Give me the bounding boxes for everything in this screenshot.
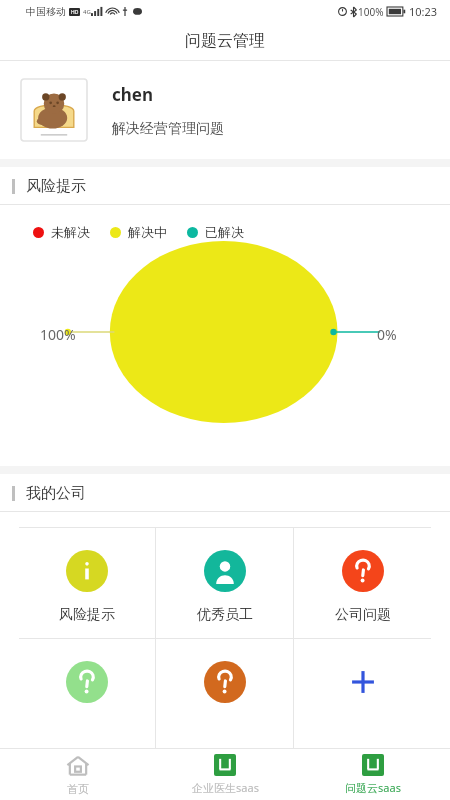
button[interactable] <box>294 639 431 748</box>
staticText: 中国移动 <box>26 5 66 18</box>
staticText: 未解决 <box>51 224 90 240</box>
button[interactable] <box>19 639 155 748</box>
staticText: 问题云saas <box>345 780 401 795</box>
staticText: 问题云管理 <box>185 31 265 51</box>
button[interactable] <box>156 639 293 748</box>
staticText: 100% <box>40 325 76 344</box>
button[interactable]: 首页 <box>8 749 148 800</box>
staticText: 优秀员工 <box>197 606 253 624</box>
staticText: 4G <box>83 8 91 16</box>
button[interactable]: 问题云saas <box>303 749 443 800</box>
staticText: 企业医生saas <box>192 780 259 795</box>
staticText: chen <box>112 83 154 106</box>
staticText: 公司问题 <box>335 606 391 624</box>
staticText: 首页 <box>67 782 89 796</box>
button[interactable]: 公司问题 <box>294 528 431 638</box>
staticText: 风险提示 <box>26 177 86 196</box>
staticText: 0% <box>377 325 397 344</box>
staticText: 解决中 <box>128 224 167 240</box>
staticText: 我的公司 <box>26 484 86 503</box>
staticText: 已解决 <box>205 224 244 240</box>
staticText: 10:23 <box>409 4 438 19</box>
button[interactable]: chen <box>0 61 450 159</box>
button[interactable]: 优秀员工 <box>156 528 293 638</box>
staticText: 100% <box>358 5 384 19</box>
button[interactable]: 风险提示 <box>19 528 155 638</box>
button[interactable]: 企业医生saas <box>155 749 295 800</box>
staticText: 解决经营管理问题 <box>112 120 224 138</box>
staticText: 风险提示 <box>59 606 115 624</box>
staticText: HD <box>71 9 79 16</box>
